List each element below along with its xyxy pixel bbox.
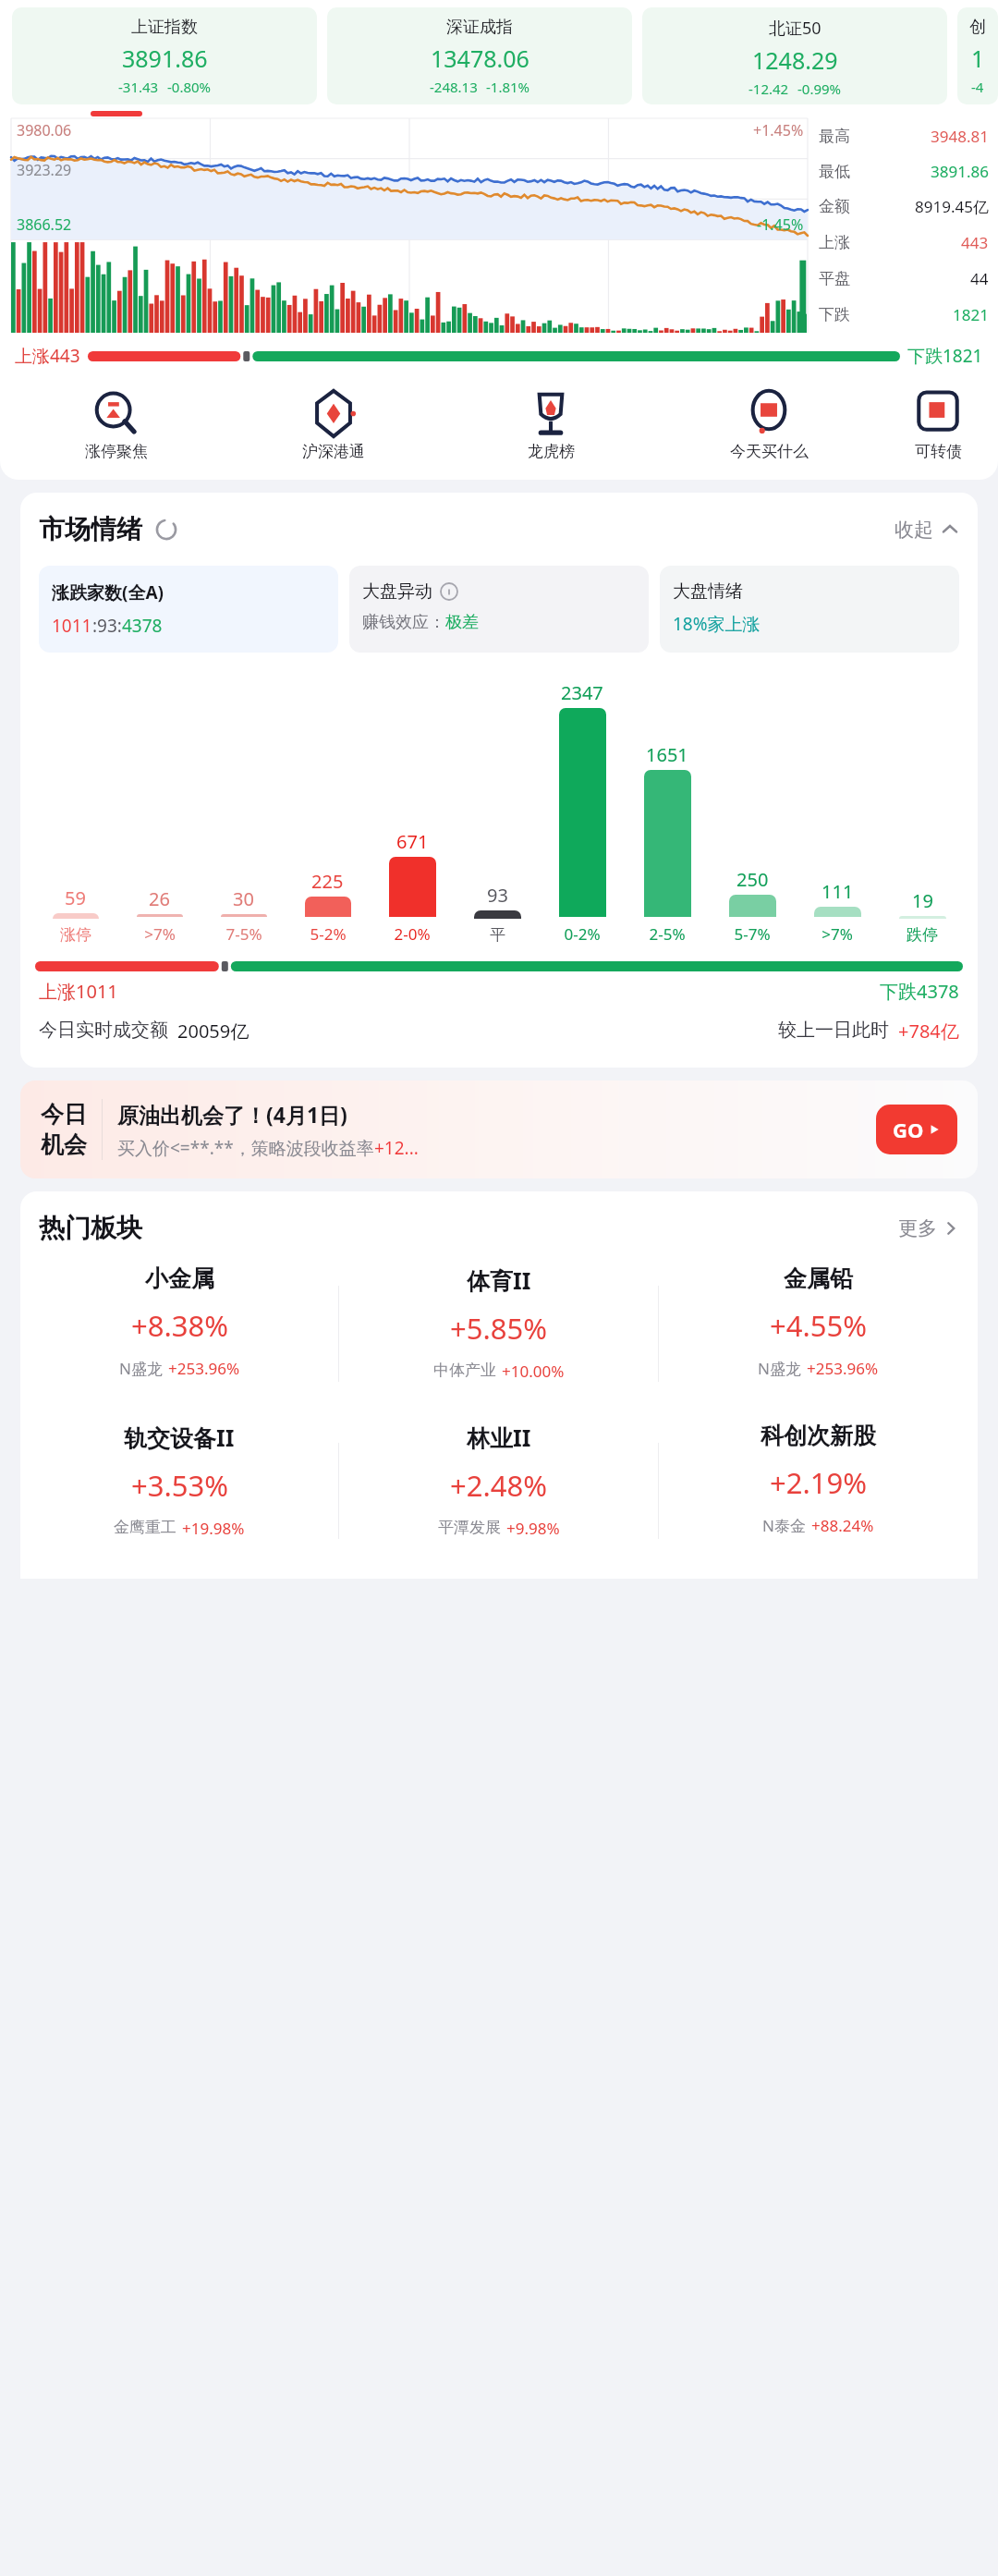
staticText: 111: [822, 879, 854, 904]
staticText: 4378: [122, 614, 163, 638]
staticText: 最高: [819, 127, 850, 146]
staticText: 今日: [41, 1100, 87, 1129]
button[interactable]: 涨跌家数(全A): [39, 566, 338, 653]
staticText: 3923.29: [17, 160, 72, 180]
button[interactable]: 北证50: [642, 7, 947, 104]
staticText: 59: [65, 885, 86, 910]
staticText: 上涨443: [15, 344, 80, 368]
staticText: 涨跌家数(全A): [52, 580, 164, 604]
staticText: 93: [487, 883, 508, 908]
staticText: 1: [971, 43, 985, 74]
staticText: 市场情绪: [39, 513, 142, 545]
button[interactable]: 今日: [20, 1080, 978, 1178]
button[interactable]: 沪深港通: [225, 386, 442, 463]
button[interactable]: 科创次新股: [659, 1422, 978, 1560]
staticText: 3866.52: [17, 214, 72, 235]
staticText: 下跌1821: [907, 344, 983, 368]
button[interactable]: 轨交设备II: [20, 1422, 338, 1560]
staticText: 体育II: [467, 1264, 531, 1296]
button[interactable]: 龙虎榜: [442, 386, 660, 463]
staticText: 443: [961, 232, 989, 253]
staticText: 30: [233, 886, 254, 911]
button[interactable]: 深证成指: [327, 7, 632, 104]
staticText: +9.98%: [506, 1518, 560, 1539]
staticText: GO: [893, 1116, 924, 1143]
staticText: 下跌4378: [880, 979, 959, 1004]
staticText: +10.00%: [502, 1361, 565, 1382]
button[interactable]: Index trend chart: [11, 118, 808, 333]
staticText: 1248.29: [752, 44, 838, 76]
staticText: +5.85%: [450, 1309, 547, 1348]
staticText: 今日实时成交额: [39, 1019, 168, 1042]
staticText: -1.81%: [486, 78, 530, 96]
staticText: +253.96%: [807, 1358, 879, 1379]
button[interactable]: 金属铅: [659, 1264, 978, 1403]
staticText: 赚钱效应：: [362, 612, 445, 633]
staticText: 平: [490, 925, 505, 945]
staticText: 买入价<=**.**，策略波段收益率: [117, 1136, 374, 1160]
staticText: 上证指数: [131, 17, 198, 38]
staticText: 金额: [819, 197, 850, 216]
staticText: 更多: [898, 1216, 937, 1240]
staticText: 下跌: [819, 305, 850, 324]
button[interactable]: 大盘情绪: [660, 566, 959, 653]
staticText: N泰金: [762, 1515, 806, 1536]
staticText: 3891.86: [122, 43, 208, 74]
button[interactable]: 今天买什么: [660, 386, 878, 463]
staticText: N盛龙: [119, 1358, 163, 1379]
staticText: -4: [971, 78, 984, 96]
staticText: 北证50: [769, 17, 822, 40]
button[interactable]: GO: [876, 1105, 957, 1154]
staticText: >7%: [822, 923, 853, 945]
staticText: +784亿: [898, 1019, 959, 1044]
button[interactable]: Refresh: [153, 517, 179, 543]
staticText: 中体产业: [433, 1361, 496, 1380]
button[interactable]: 收起: [895, 518, 959, 542]
button[interactable]: 大盘异动: [349, 566, 649, 653]
staticText: -0.80%: [167, 78, 212, 96]
staticText: 7-5%: [225, 923, 262, 945]
button[interactable]: 上证指数: [12, 7, 317, 104]
staticText: 轨交设备II: [124, 1422, 235, 1453]
staticText: 创: [969, 17, 986, 38]
staticText: 2347: [561, 680, 603, 705]
staticText: +8.38%: [131, 1306, 228, 1345]
staticText: 1651: [646, 742, 688, 767]
staticText: 大盘异动: [362, 580, 432, 603]
staticText: 250: [736, 867, 769, 892]
button[interactable]: 更多: [898, 1216, 959, 1240]
staticText: 大盘情绪: [673, 580, 743, 603]
staticText: 金鹰重工: [114, 1518, 176, 1537]
button[interactable]: 小金属: [20, 1264, 338, 1403]
staticText: -31.43: [118, 78, 159, 96]
staticText: N盛龙: [758, 1358, 801, 1379]
staticText: +3.53%: [131, 1466, 228, 1505]
staticText: 涨停: [60, 925, 91, 945]
staticText: 极差: [445, 612, 479, 633]
button[interactable]: 涨停聚焦: [7, 386, 225, 463]
staticText: :93:: [92, 614, 122, 638]
staticText: 涨停聚焦: [85, 442, 148, 461]
staticText: +19.98%: [182, 1518, 245, 1539]
staticText: +4.55%: [770, 1306, 867, 1345]
staticText: -1.45%: [757, 214, 804, 235]
staticText: 26: [149, 886, 170, 911]
staticText: 44: [970, 268, 989, 289]
button[interactable]: 体育II: [339, 1264, 658, 1403]
staticText: 林业II: [467, 1422, 531, 1453]
staticText: -0.99%: [797, 79, 842, 98]
staticText: 平潭发展: [438, 1518, 501, 1537]
staticText: 3948.81: [931, 126, 989, 147]
staticText: 科创次新股: [761, 1422, 876, 1450]
staticText: 机会: [41, 1130, 87, 1159]
staticText: +12...: [374, 1136, 419, 1160]
staticText: 收起: [895, 518, 933, 542]
staticText: 可转债: [915, 442, 962, 461]
button[interactable]: 林业II: [339, 1422, 658, 1560]
staticText: 5-7%: [734, 923, 771, 945]
staticText: 今天买什么: [730, 442, 809, 461]
button[interactable]: 可转债: [878, 386, 998, 463]
button[interactable]: 创: [957, 7, 998, 104]
staticText: 沪深港通: [302, 442, 365, 461]
staticText: +2.19%: [770, 1463, 867, 1502]
